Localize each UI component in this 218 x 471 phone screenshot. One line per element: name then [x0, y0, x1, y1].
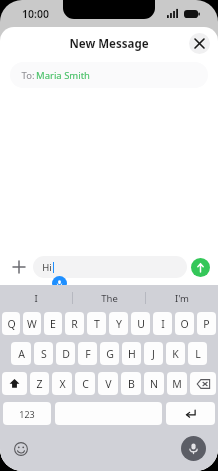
- staticText: J: [152, 347, 155, 361]
- staticText: Q: [7, 317, 16, 331]
- staticText: Z: [36, 377, 43, 391]
- button[interactable]: I: [0, 285, 72, 311]
- staticText: X: [59, 377, 66, 391]
- button[interactable]: Z: [30, 372, 49, 395]
- button[interactable]: N: [144, 372, 164, 395]
- button[interactable]: To:: [10, 62, 208, 88]
- staticText: U: [137, 317, 145, 331]
- button[interactable]: I: [153, 312, 172, 335]
- button[interactable]: V: [98, 372, 118, 395]
- staticText: S: [41, 347, 47, 361]
- button[interactable]: Add attachment: [8, 256, 30, 278]
- button[interactable]: P: [197, 312, 216, 335]
- button[interactable]: W: [23, 312, 41, 335]
- button[interactable]: M: [167, 372, 187, 395]
- staticText: The: [101, 292, 118, 305]
- button[interactable]: L: [188, 342, 207, 365]
- button[interactable]: Key: [190, 372, 216, 395]
- staticText: V: [105, 377, 112, 391]
- button[interactable]: Send: [191, 258, 210, 277]
- button[interactable]: U: [131, 312, 150, 335]
- staticText: L: [195, 347, 201, 361]
- staticText: To:: [20, 69, 36, 82]
- staticText: G: [106, 347, 114, 361]
- staticText: W: [27, 317, 37, 331]
- button[interactable]: D: [56, 342, 75, 365]
- staticText: O: [180, 317, 189, 331]
- button[interactable]: Y: [109, 312, 128, 335]
- staticText: F: [85, 347, 91, 361]
- button[interactable]: Return: [166, 402, 215, 425]
- button[interactable]: A: [11, 342, 31, 365]
- button[interactable]: K: [166, 342, 185, 365]
- staticText: P: [203, 317, 210, 331]
- button[interactable]: Q: [2, 312, 20, 335]
- staticText: C: [82, 377, 89, 391]
- button[interactable]: O: [175, 312, 194, 335]
- button[interactable]: R: [65, 312, 84, 335]
- button[interactable]: J: [144, 342, 163, 365]
- button[interactable]: E: [44, 312, 62, 335]
- staticText: New Message: [69, 36, 149, 52]
- staticText: T: [94, 317, 100, 331]
- staticText: K: [172, 347, 179, 361]
- button[interactable]: Key: [2, 372, 27, 395]
- staticText: 10:00: [22, 7, 49, 21]
- button[interactable]: 123: [3, 402, 51, 425]
- button[interactable]: The: [73, 285, 145, 311]
- staticText: Maria Smith: [36, 69, 90, 82]
- staticText: Hi: [42, 261, 52, 274]
- staticText: H: [128, 347, 136, 361]
- button[interactable]: Dictate: [52, 276, 67, 291]
- button[interactable]: B: [121, 372, 141, 395]
- staticText: M: [172, 377, 182, 391]
- staticText: I'm: [175, 292, 189, 305]
- button[interactable]: I'm: [146, 285, 218, 311]
- button[interactable]: Emoji: [12, 440, 30, 458]
- button[interactable]: H: [122, 342, 141, 365]
- staticText: R: [71, 317, 78, 331]
- button[interactable]: S: [34, 342, 53, 365]
- button[interactable]: X: [52, 372, 72, 395]
- staticText: A: [18, 347, 25, 361]
- staticText: N: [150, 377, 158, 391]
- button[interactable]: C: [75, 372, 95, 395]
- button[interactable]: T: [87, 312, 106, 335]
- button[interactable]: F: [78, 342, 97, 365]
- button[interactable]: Close: [189, 33, 210, 54]
- staticText: 123: [19, 408, 35, 420]
- button[interactable]: G: [100, 342, 119, 365]
- staticText: D: [62, 347, 70, 361]
- staticText: I: [161, 317, 165, 331]
- staticText: Y: [116, 317, 122, 331]
- button[interactable]: Hi: [33, 256, 187, 278]
- button[interactable]: Dictation: [181, 436, 206, 461]
- staticText: B: [128, 377, 135, 391]
- staticText: E: [50, 317, 56, 331]
- staticText: I: [34, 292, 38, 305]
